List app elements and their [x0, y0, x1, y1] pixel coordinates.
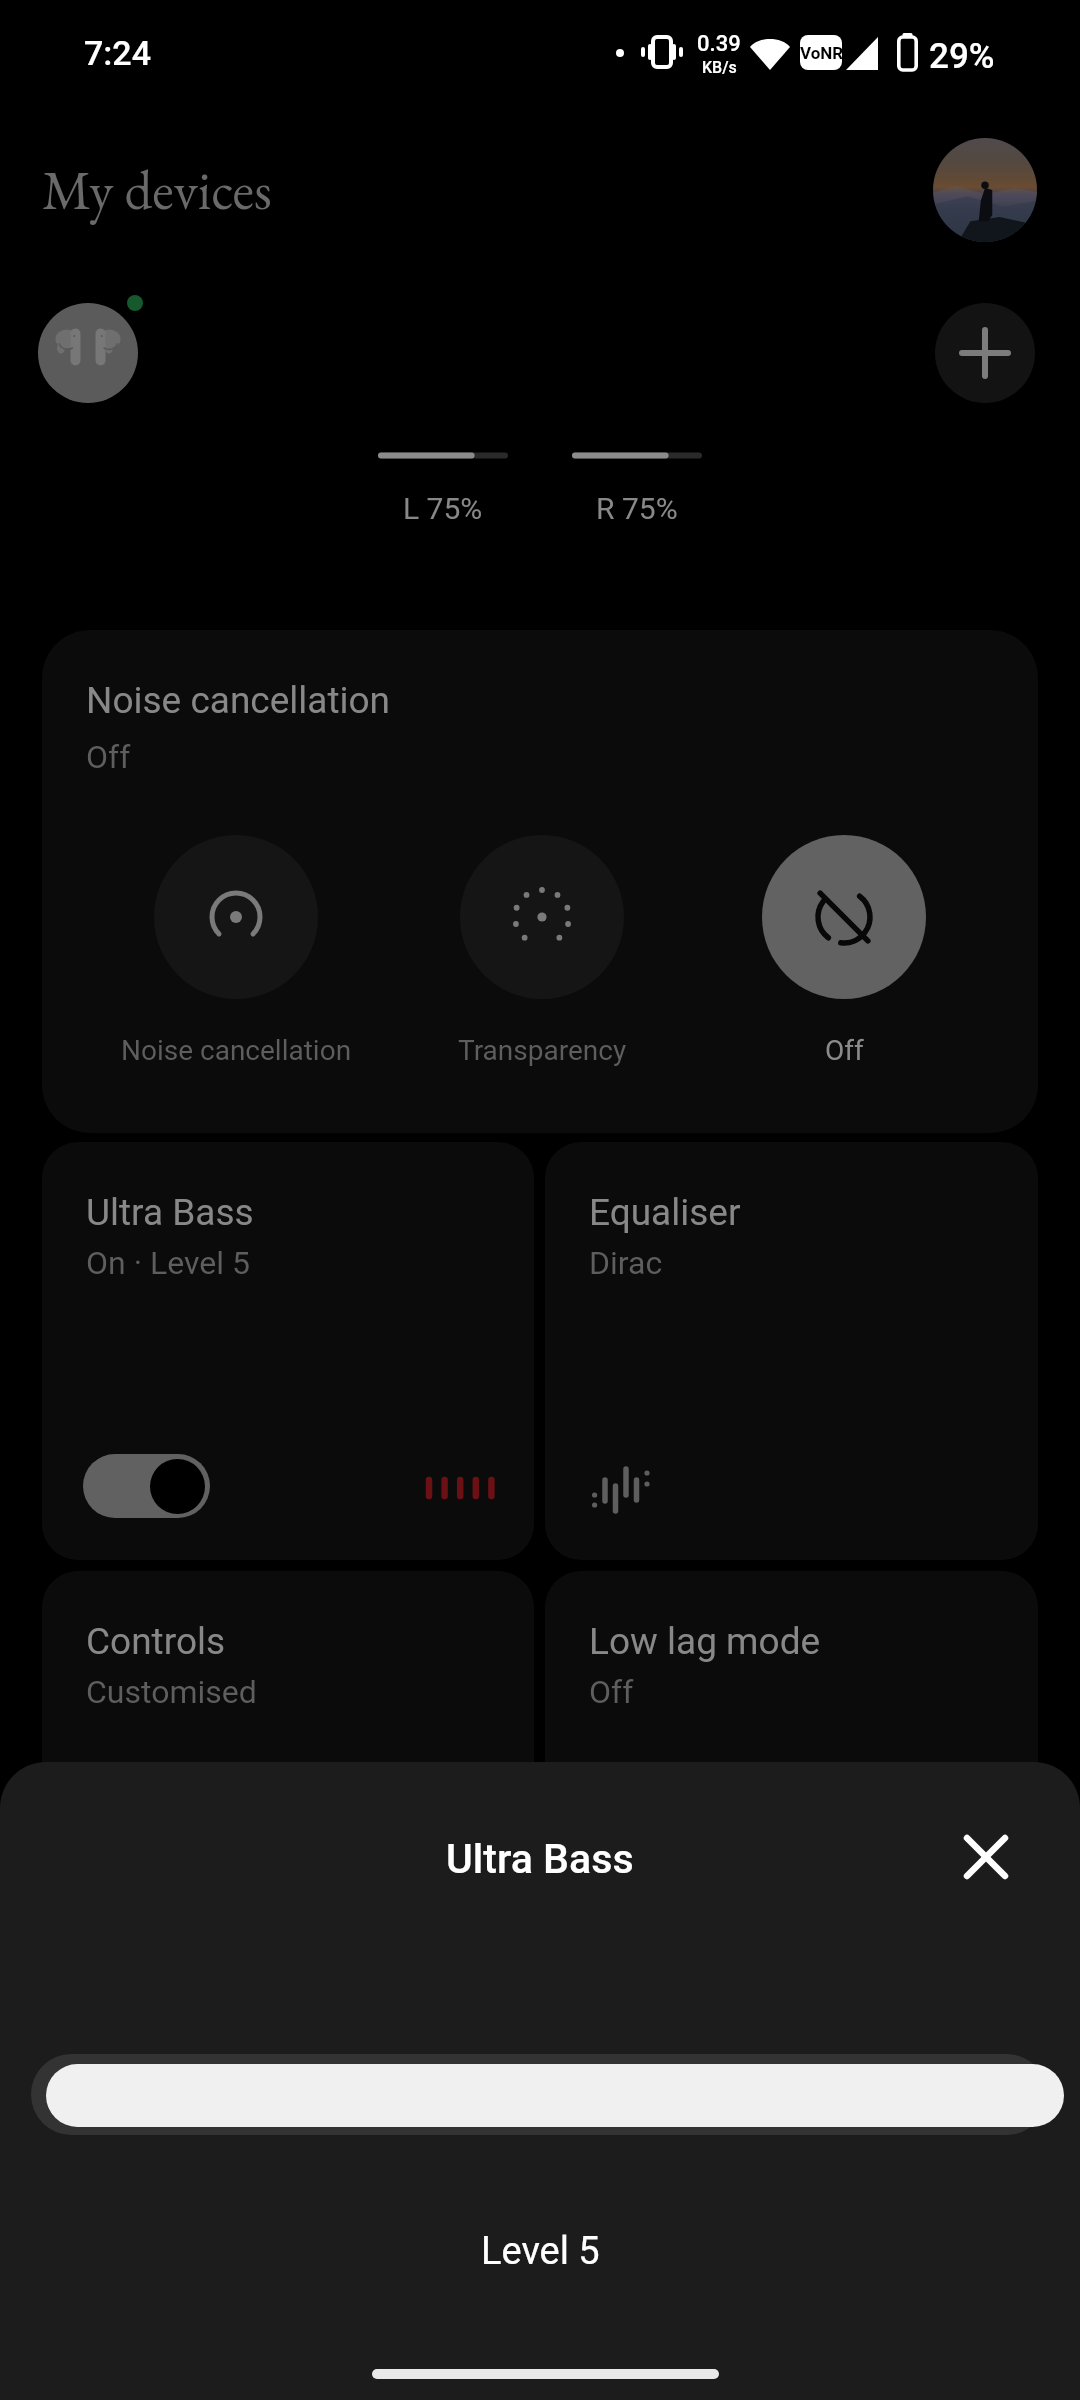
- button[interactable]: Earbuds: [38, 303, 138, 403]
- staticText: Ultra Bass: [86, 1191, 254, 1234]
- staticText: Equaliser: [589, 1191, 741, 1234]
- staticText: KB/s: [702, 58, 737, 77]
- button[interactable]: Off: [662, 835, 1026, 1067]
- button[interactable]: L 75%: [378, 452, 508, 526]
- staticText: 7:24: [84, 33, 151, 73]
- staticText: Dirac: [589, 1244, 663, 1282]
- button[interactable]: Close: [944, 1815, 1027, 1898]
- staticText: Off: [86, 738, 131, 776]
- button[interactable]: Transparency: [360, 835, 724, 1067]
- staticText: Off: [825, 1034, 864, 1067]
- button[interactable]: R 75%: [572, 452, 702, 526]
- staticText: Customised: [86, 1673, 257, 1711]
- button[interactable]: Noise cancellation: [54, 835, 418, 1067]
- button[interactable]: Add device: [935, 303, 1035, 403]
- staticText: Noise cancellation: [86, 679, 391, 722]
- staticText: 0.39: [697, 31, 741, 57]
- staticText: VoNR: [800, 43, 842, 63]
- staticText: L 75%: [403, 491, 483, 526]
- staticText: Transparency: [458, 1034, 627, 1067]
- staticText: 29%: [929, 36, 995, 77]
- button[interactable]: Noise cancellation: [42, 630, 1038, 1133]
- button[interactable]: Ultra Bass level slider: [31, 2054, 1047, 2135]
- button[interactable]: Equaliser: [545, 1142, 1038, 1560]
- button[interactable]: Controls: [42, 1571, 534, 1871]
- staticText: Level 5: [481, 2229, 600, 2274]
- staticText: Low lag mode: [589, 1620, 821, 1663]
- staticText: Ultra Bass: [446, 1835, 634, 1883]
- staticText: On · Level 5: [86, 1244, 250, 1282]
- staticText: Noise cancellation: [121, 1034, 352, 1067]
- staticText: Controls: [86, 1620, 226, 1663]
- staticText: Off: [589, 1673, 634, 1711]
- staticText: R 75%: [596, 491, 678, 526]
- button[interactable]: Low lag mode: [545, 1571, 1038, 1871]
- staticText: My devices: [42, 154, 272, 226]
- button[interactable]: Profile: [933, 138, 1037, 242]
- button[interactable]: Ultra Bass toggle: [83, 1454, 210, 1518]
- button[interactable]: Ultra Bass: [42, 1142, 534, 1560]
